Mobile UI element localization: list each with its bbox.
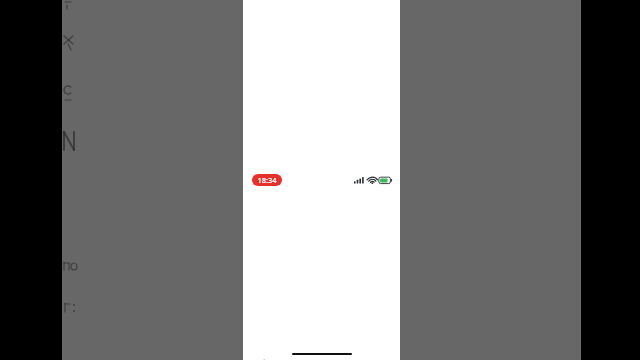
staticText: 18:34 [257,175,277,185]
